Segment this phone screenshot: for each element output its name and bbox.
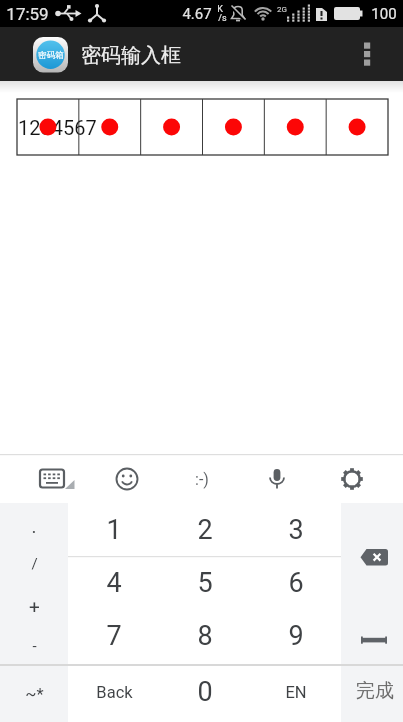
staticText: 2G <box>277 5 287 14</box>
staticText: 8 <box>197 620 213 652</box>
staticText: 5 <box>197 567 213 599</box>
staticText: 4 <box>106 567 122 599</box>
staticText: - <box>32 637 37 655</box>
staticText: 17:59 <box>6 4 49 24</box>
staticText: ~* <box>25 685 44 704</box>
staticText: /s <box>218 13 227 24</box>
staticText: 密码箱 <box>38 50 64 61</box>
staticText: 100 <box>371 5 397 23</box>
staticText: K <box>217 4 223 15</box>
staticText: 7 <box>106 620 122 652</box>
staticText: 4.67 <box>182 5 212 23</box>
staticText: 3 <box>288 514 304 546</box>
staticText: Back <box>96 683 133 702</box>
staticText: EN <box>285 683 307 702</box>
staticText: :-) <box>195 470 209 489</box>
staticText: 密码输入框 <box>81 43 181 68</box>
staticText: + <box>29 595 40 617</box>
staticText: 1234567 <box>18 116 97 139</box>
staticText: 2 <box>197 514 213 546</box>
staticText: 1 <box>106 514 122 546</box>
staticText: . <box>31 515 37 537</box>
staticText: 0 <box>197 676 213 708</box>
staticText: 完成 <box>356 679 394 703</box>
staticText: 9 <box>288 620 304 652</box>
staticText: 6 <box>288 567 304 599</box>
staticText: / <box>31 555 38 573</box>
